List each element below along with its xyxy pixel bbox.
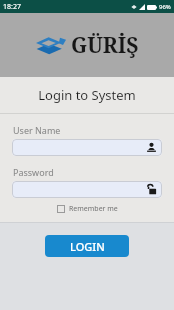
staticText: Login to System: [38, 86, 136, 104]
staticText: GÜRİŞ: [71, 31, 139, 60]
staticText: Password: [13, 166, 54, 178]
staticText: 18:27: [3, 2, 21, 12]
button[interactable]: [12, 181, 162, 198]
staticText: 96%: [159, 3, 171, 11]
button[interactable]: LOGIN: [45, 235, 129, 257]
button[interactable]: [12, 139, 162, 156]
button[interactable]: Remember me: [57, 204, 118, 214]
staticText: User Name: [13, 124, 61, 136]
staticText: LOGIN: [70, 239, 105, 254]
staticText: Remember me: [69, 204, 118, 214]
